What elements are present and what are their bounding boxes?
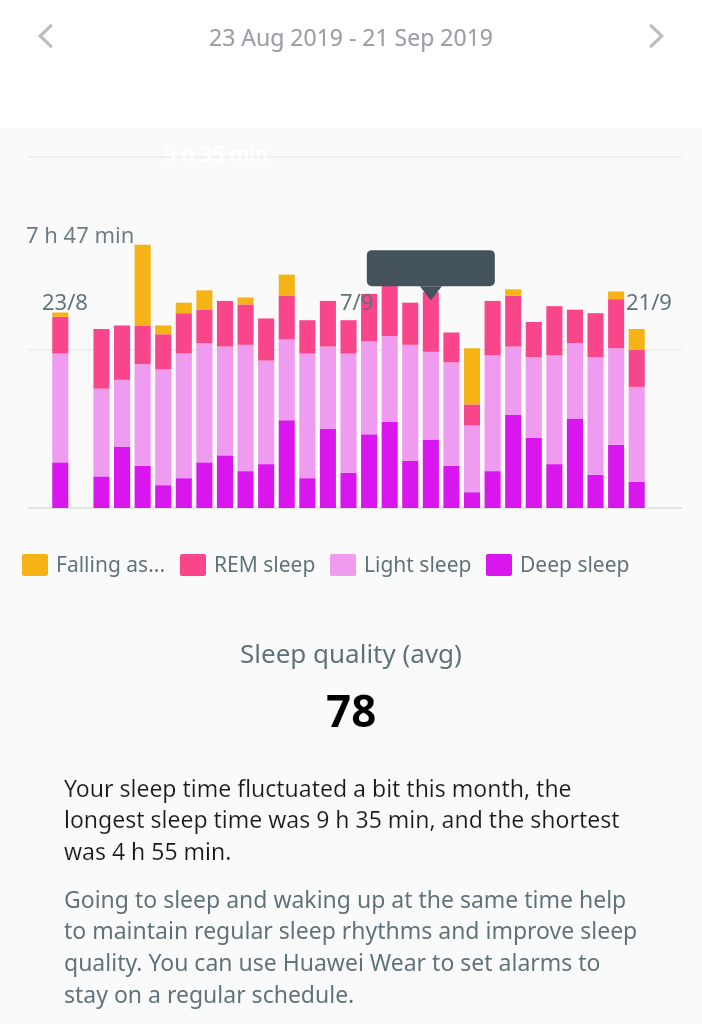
button[interactable]: Next period xyxy=(620,0,692,72)
staticText: 21/9 xyxy=(626,286,672,316)
button[interactable]: REM sleep xyxy=(180,550,316,579)
staticText: Deep sleep xyxy=(520,550,630,579)
button[interactable]: Falling as... xyxy=(22,550,166,579)
button[interactable]: Deep sleep xyxy=(486,550,630,579)
staticText: REM sleep xyxy=(214,550,316,579)
staticText: Falling as... xyxy=(56,550,166,579)
staticText: Sleep quality (avg) xyxy=(240,635,462,670)
staticText: 7/9 xyxy=(340,286,374,316)
staticText: 23 Aug 2019 - 21 Sep 2019 xyxy=(209,21,493,52)
staticText: Your sleep time fluctuated a bit this mo… xyxy=(64,772,638,867)
staticText: Light sleep xyxy=(364,550,472,579)
staticText: Going to sleep and waking up at the same… xyxy=(64,883,638,1010)
button[interactable]: Light sleep xyxy=(330,550,472,579)
staticText: 7 h 47 min xyxy=(26,219,135,249)
staticText: 23/8 xyxy=(42,286,88,316)
staticText: 78 xyxy=(326,680,377,740)
button[interactable]: Previous period xyxy=(10,0,82,72)
